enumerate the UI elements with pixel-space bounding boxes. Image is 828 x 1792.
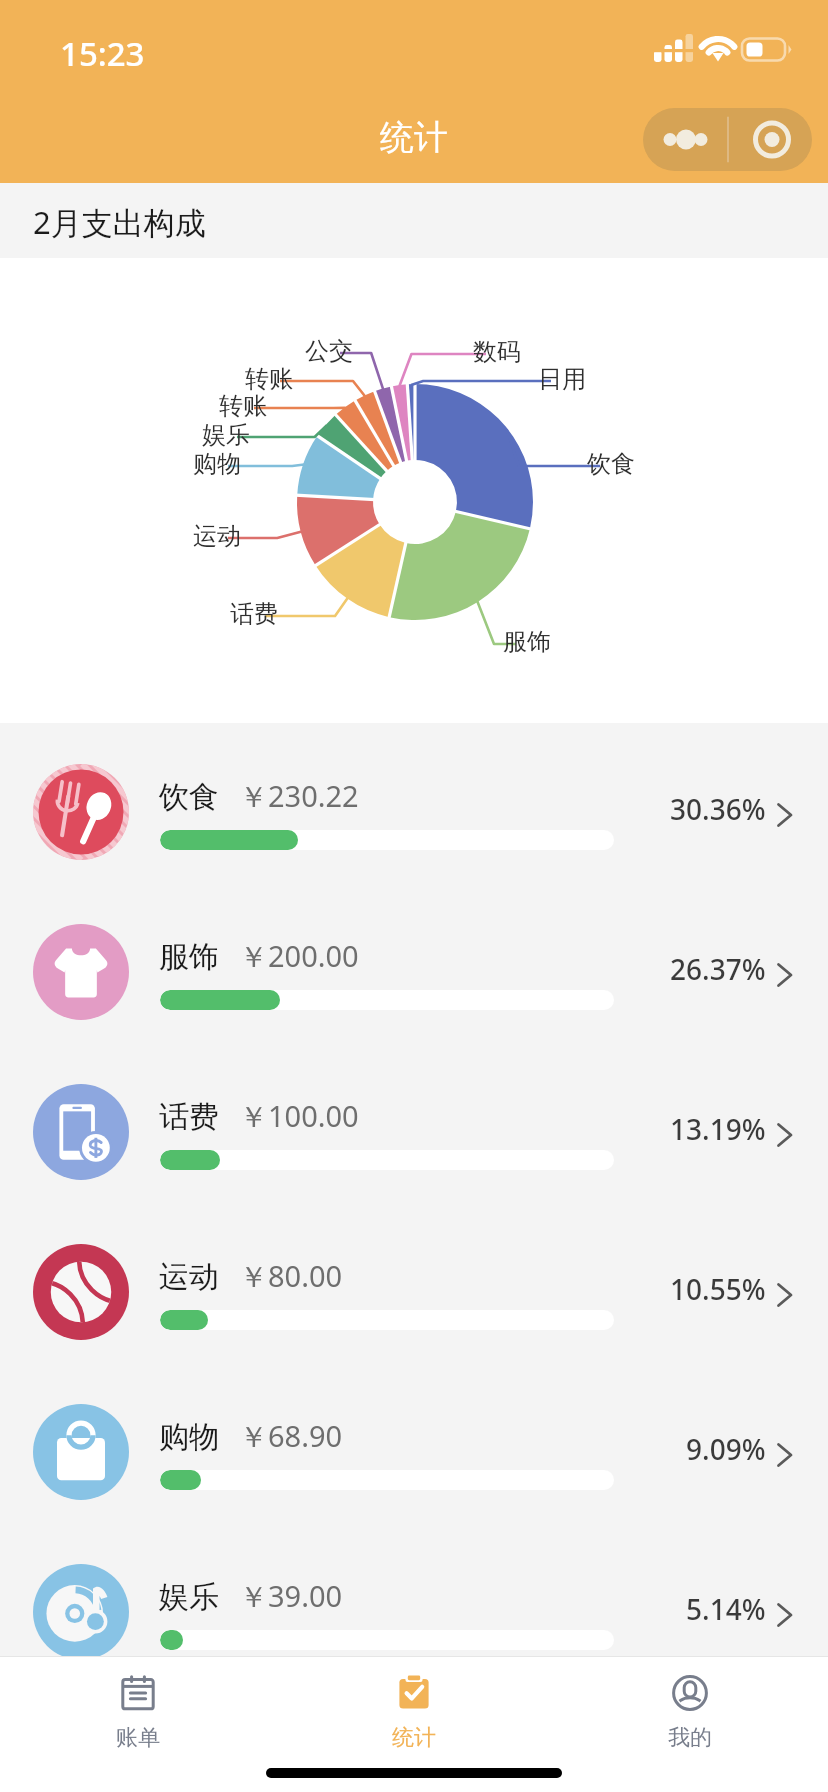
staticText: 账单 — [116, 1724, 160, 1752]
staticText: 转账 — [245, 364, 293, 394]
staticText: 话费 — [159, 1098, 219, 1136]
button[interactable]: 购物 — [0, 1363, 828, 1523]
staticText: 购物 — [193, 449, 241, 479]
staticText: 26.37% — [670, 950, 766, 988]
staticText: 饮食 — [587, 449, 635, 479]
staticText: 10.55% — [670, 1270, 766, 1308]
staticText: 统计 — [380, 116, 448, 159]
staticText: 饮食 — [159, 778, 219, 816]
staticText: 运动 — [159, 1258, 219, 1296]
staticText: 服饰 — [159, 938, 219, 976]
staticText: ￥100.00 — [239, 1096, 359, 1136]
button[interactable]: 娱乐 — [0, 1523, 828, 1656]
staticText: 我的 — [668, 1724, 712, 1752]
button[interactable]: 饮食 — [0, 723, 828, 883]
button[interactable]: 话费 — [0, 1043, 828, 1203]
staticText: 统计 — [392, 1724, 436, 1752]
staticText: ￥80.00 — [239, 1256, 343, 1296]
button[interactable]: 运动 — [0, 1203, 828, 1363]
staticText: ￥200.00 — [239, 936, 359, 976]
button[interactable]: 账单 — [0, 1657, 276, 1754]
staticText: 15:23 — [60, 31, 145, 76]
staticText: 公交 — [305, 336, 353, 366]
staticText: 日用 — [538, 364, 586, 394]
staticText: 话费 — [230, 599, 278, 629]
staticText: 13.19% — [670, 1110, 766, 1148]
button[interactable]: 我的 — [552, 1657, 828, 1754]
button[interactable]: More options and close mini program — [643, 108, 812, 171]
staticText: ￥39.00 — [239, 1576, 343, 1616]
staticText: 5.14% — [686, 1590, 766, 1628]
staticText: 数码 — [473, 337, 521, 367]
button[interactable]: 服饰 — [0, 883, 828, 1043]
staticText: 运动 — [193, 521, 241, 551]
button[interactable]: 统计 — [276, 1657, 552, 1754]
staticText: 购物 — [159, 1418, 219, 1456]
staticText: 30.36% — [670, 790, 766, 828]
staticText: 服饰 — [503, 627, 551, 657]
staticText: 娱乐 — [202, 420, 250, 450]
staticText: 娱乐 — [159, 1578, 219, 1616]
staticText: ￥230.22 — [239, 776, 359, 816]
staticText: 9.09% — [686, 1430, 766, 1468]
staticText: 转账 — [219, 391, 267, 421]
staticText: 2月支出构成 — [33, 201, 206, 243]
staticText: ￥68.90 — [239, 1416, 343, 1456]
